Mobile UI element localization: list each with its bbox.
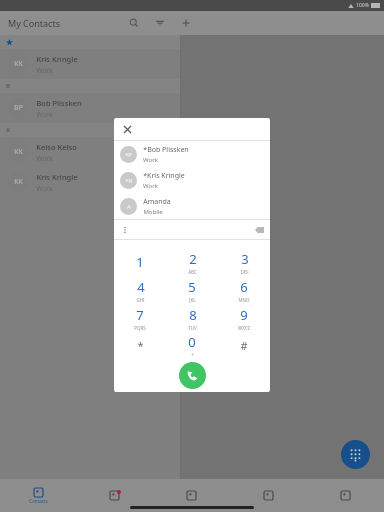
staticText: Kris Kringle [36,172,78,182]
staticText: DEF [240,269,249,275]
staticText: Work [143,182,158,190]
button[interactable]: * [114,332,166,358]
button[interactable]: 1 [114,248,166,276]
button[interactable]: KK [0,137,180,167]
staticText: 2 [189,250,197,268]
button[interactable]: More options [119,224,131,236]
staticText: *P [125,151,132,159]
staticText: My Contacts [8,17,60,29]
staticText: KK [14,147,23,157]
button[interactable]: Open dialpad [341,440,370,469]
button[interactable]: Messages [153,479,230,512]
staticText: PQRS [134,325,146,331]
staticText: *Kris Kringle [143,171,185,181]
staticText: Work [143,156,158,164]
staticText: GHI [136,297,145,303]
staticText: WXYZ [238,325,250,331]
staticText: Amanda [143,197,171,207]
staticText: Mobile [143,208,163,216]
staticText: Contacts [29,498,48,504]
button[interactable]: BP [0,93,180,123]
staticText: B [6,82,10,90]
button[interactable]: Contacts [0,479,76,512]
staticText: Kris Kringle [36,54,78,64]
staticText: 7 [136,306,144,324]
button[interactable]: Backspace [252,223,266,237]
staticText: 5 [188,278,196,296]
staticText: Work [36,184,53,193]
staticText: 0 [188,333,196,351]
button[interactable]: 9 [218,304,270,332]
button[interactable]: 5 [166,276,218,304]
button[interactable]: 2 [166,248,218,276]
button[interactable]: 6 [218,276,270,304]
staticText: Work [36,154,53,163]
button[interactable]: Search [126,15,142,31]
staticText: 100% [356,2,369,9]
staticText: Kelso Kelso [36,142,77,152]
button[interactable]: Close [120,122,134,136]
staticText: MNO [238,297,250,303]
staticText: BP [14,103,23,113]
button[interactable]: A [114,193,270,219]
button[interactable]: 4 [114,276,166,304]
button[interactable]: Sort [152,15,168,31]
staticText: 8 [189,306,197,324]
button[interactable]: 7 [114,304,166,332]
button[interactable]: # [218,332,270,358]
button[interactable]: Recents [76,479,153,512]
button[interactable]: 3 [218,248,270,276]
staticText: # [240,338,248,353]
staticText: Work [36,110,53,119]
staticText: A [127,203,131,211]
button[interactable]: *P [114,141,270,167]
button[interactable]: More [307,479,384,512]
staticText: + [191,352,194,358]
staticText: 1 [136,253,144,271]
staticText: *Bob Plissken [143,145,189,155]
button[interactable]: Voicemail [230,479,307,512]
staticText: 4 [137,278,145,296]
staticText: ABC [188,269,197,275]
button[interactable]: Add contact [178,15,194,31]
staticText: TUV [188,325,197,331]
staticText: *K [125,177,133,185]
staticText: 9 [240,306,248,324]
staticText: 3 [241,250,249,268]
button[interactable]: KK [0,49,180,79]
staticText: JKL [189,297,196,303]
staticText: * [137,338,144,353]
button[interactable]: *K [114,167,270,193]
staticText: K [6,126,10,134]
staticText: 6 [240,278,248,296]
staticText: Work [36,66,53,75]
button[interactable]: Call [179,362,206,389]
staticText: Bob Plissken [36,98,82,108]
button[interactable]: KK [0,167,180,197]
button[interactable]: 8 [166,304,218,332]
button[interactable]: 0 [166,332,218,358]
staticText: KK [14,177,23,187]
staticText: KK [14,59,23,69]
